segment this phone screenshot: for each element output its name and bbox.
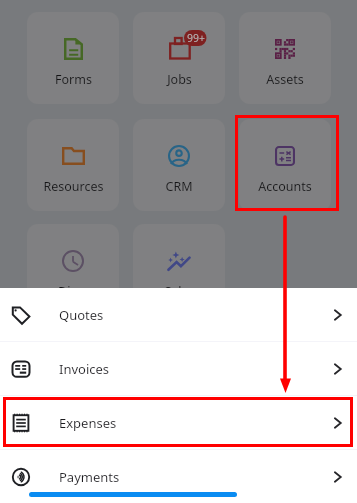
staticText: CRM xyxy=(165,178,193,195)
staticText: Jobs xyxy=(167,71,192,88)
button[interactable]: Forms xyxy=(27,12,119,104)
button[interactable]: Sales xyxy=(133,224,225,316)
button[interactable]: Resources xyxy=(27,119,119,211)
staticText: Resources xyxy=(43,178,104,195)
button[interactable]: Accounts xyxy=(239,119,331,211)
staticText: Quotes xyxy=(59,306,104,324)
staticText: Assets xyxy=(266,71,304,88)
staticText: Expenses xyxy=(59,414,117,432)
button[interactable]: 99+ xyxy=(133,12,225,104)
button[interactable]: Quotes xyxy=(0,288,357,342)
staticText: Sales xyxy=(164,283,195,300)
button[interactable]: Expenses xyxy=(0,396,357,450)
button[interactable]: Invoices xyxy=(0,342,357,396)
staticText: Forms xyxy=(55,71,92,88)
button[interactable]: Diary xyxy=(27,224,119,316)
staticText: Payments xyxy=(59,468,120,486)
staticText: Invoices xyxy=(59,360,110,378)
button[interactable]: CRM xyxy=(133,119,225,211)
staticText: Diary xyxy=(58,283,89,300)
button[interactable]: Assets xyxy=(239,12,331,104)
button[interactable]: Payments xyxy=(0,450,357,503)
staticText: Accounts xyxy=(258,178,312,195)
staticText: 99+ xyxy=(187,31,206,45)
